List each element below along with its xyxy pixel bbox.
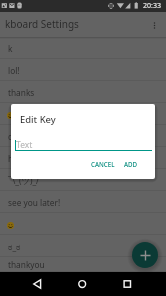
- staticText: 20:33: [143, 1, 161, 11]
- staticText: Edit Key: [20, 113, 56, 126]
- staticText: thankyou: [8, 259, 45, 270]
- button[interactable]: Home: [70, 272, 94, 296]
- button[interactable]: Add key: [132, 242, 158, 268]
- button[interactable]: thanks: [0, 81, 166, 103]
- button[interactable]: smiley: [0, 213, 166, 235]
- staticText: CANCEL: [91, 160, 115, 168]
- other: smiley: [7, 112, 14, 119]
- button[interactable]: thankyou: [0, 257, 166, 272]
- staticText: Text: [16, 139, 33, 151]
- button[interactable]: ಠ_ಠ: [0, 235, 166, 257]
- staticText: hmm: [8, 153, 29, 164]
- staticText: ok: [8, 131, 18, 142]
- button[interactable]: k: [0, 37, 166, 59]
- staticText: lol!: [8, 65, 20, 76]
- button[interactable]: More options: [143, 14, 165, 36]
- button[interactable]: ¯\_(ツ)_/¯: [0, 169, 166, 191]
- other: smiley: [7, 222, 14, 229]
- button[interactable]: see you later!: [0, 191, 166, 213]
- button[interactable]: lol!: [0, 59, 166, 81]
- staticText: ADD: [124, 160, 138, 168]
- button[interactable]: ok: [0, 125, 166, 147]
- button[interactable]: CANCEL: [87, 156, 119, 172]
- staticText: k: [8, 43, 13, 54]
- staticText: thanks: [8, 87, 35, 98]
- button[interactable]: Back: [25, 272, 49, 296]
- staticText: ಠ_ಠ: [8, 241, 21, 252]
- staticText: see you later!: [8, 197, 61, 208]
- button[interactable]: smiley: [0, 103, 166, 125]
- button[interactable]: ADD: [120, 156, 142, 172]
- staticText: ¯\_(ツ)_/¯: [8, 175, 44, 186]
- button[interactable]: Recent apps: [115, 272, 139, 296]
- button[interactable]: hmm: [0, 147, 166, 169]
- staticText: kboard Settings: [5, 17, 79, 31]
